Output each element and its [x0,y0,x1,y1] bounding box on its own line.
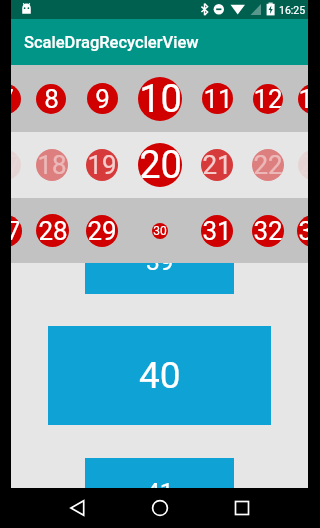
staticText: 41 [146,477,174,488]
staticText: 30 [153,224,167,238]
staticText: 12 [253,84,283,114]
staticText: 8 [44,84,59,114]
button[interactable]: 40 [48,326,271,425]
button[interactable]: 18 [36,149,68,181]
staticText: 22 [253,150,283,180]
button[interactable]: 32 [252,215,284,247]
button[interactable]: 12 [253,84,283,114]
button[interactable]: 33 [297,215,308,247]
staticText: 33 [298,216,308,246]
button[interactable]: 17 [11,150,21,180]
button[interactable]: 28 [36,214,69,247]
button[interactable]: 19 [86,149,118,181]
button[interactable]: Home [141,488,179,528]
staticText: 27 [11,216,21,246]
button[interactable]: 30 [152,223,168,239]
staticText: 23 [298,150,308,180]
staticText: 13 [298,84,308,114]
staticText: 16:25 [279,4,306,16]
staticText: 31 [202,216,232,246]
staticText: ScaleDragRecyclerView [24,33,199,52]
button[interactable]: 10 [138,77,182,121]
button[interactable]: 29 [86,215,118,247]
staticText: 11 [203,84,233,114]
button[interactable]: 21 [201,149,233,181]
staticText: 40 [139,354,181,397]
button[interactable]: 7 [11,84,21,114]
button[interactable]: 27 [11,215,22,247]
button[interactable]: 23 [298,150,308,180]
button[interactable]: Back [58,488,97,528]
button[interactable]: 13 [298,84,308,114]
button[interactable]: 41 [85,458,234,488]
staticText: 10 [139,77,182,121]
button[interactable]: ScaleDragRecyclerView [11,19,308,65]
button[interactable]: 20 [138,143,182,187]
staticText: 17 [11,150,21,180]
staticText: 32 [253,216,283,246]
staticText: 29 [87,216,117,246]
staticText: 28 [38,216,68,246]
button[interactable]: Recents [222,488,262,528]
staticText: 7 [11,84,14,114]
staticText: 21 [202,150,232,180]
button[interactable]: 8 [36,84,66,114]
button[interactable]: 11 [202,83,233,114]
staticText: 20 [139,143,182,187]
staticText: 18 [37,150,67,180]
button[interactable]: 9 [87,83,118,114]
staticText: 39 [146,247,174,276]
button[interactable]: 39 [85,228,234,294]
button[interactable]: 31 [201,215,233,247]
button[interactable]: 22 [252,149,284,181]
staticText: 9 [95,84,110,114]
staticText: 19 [87,150,117,180]
